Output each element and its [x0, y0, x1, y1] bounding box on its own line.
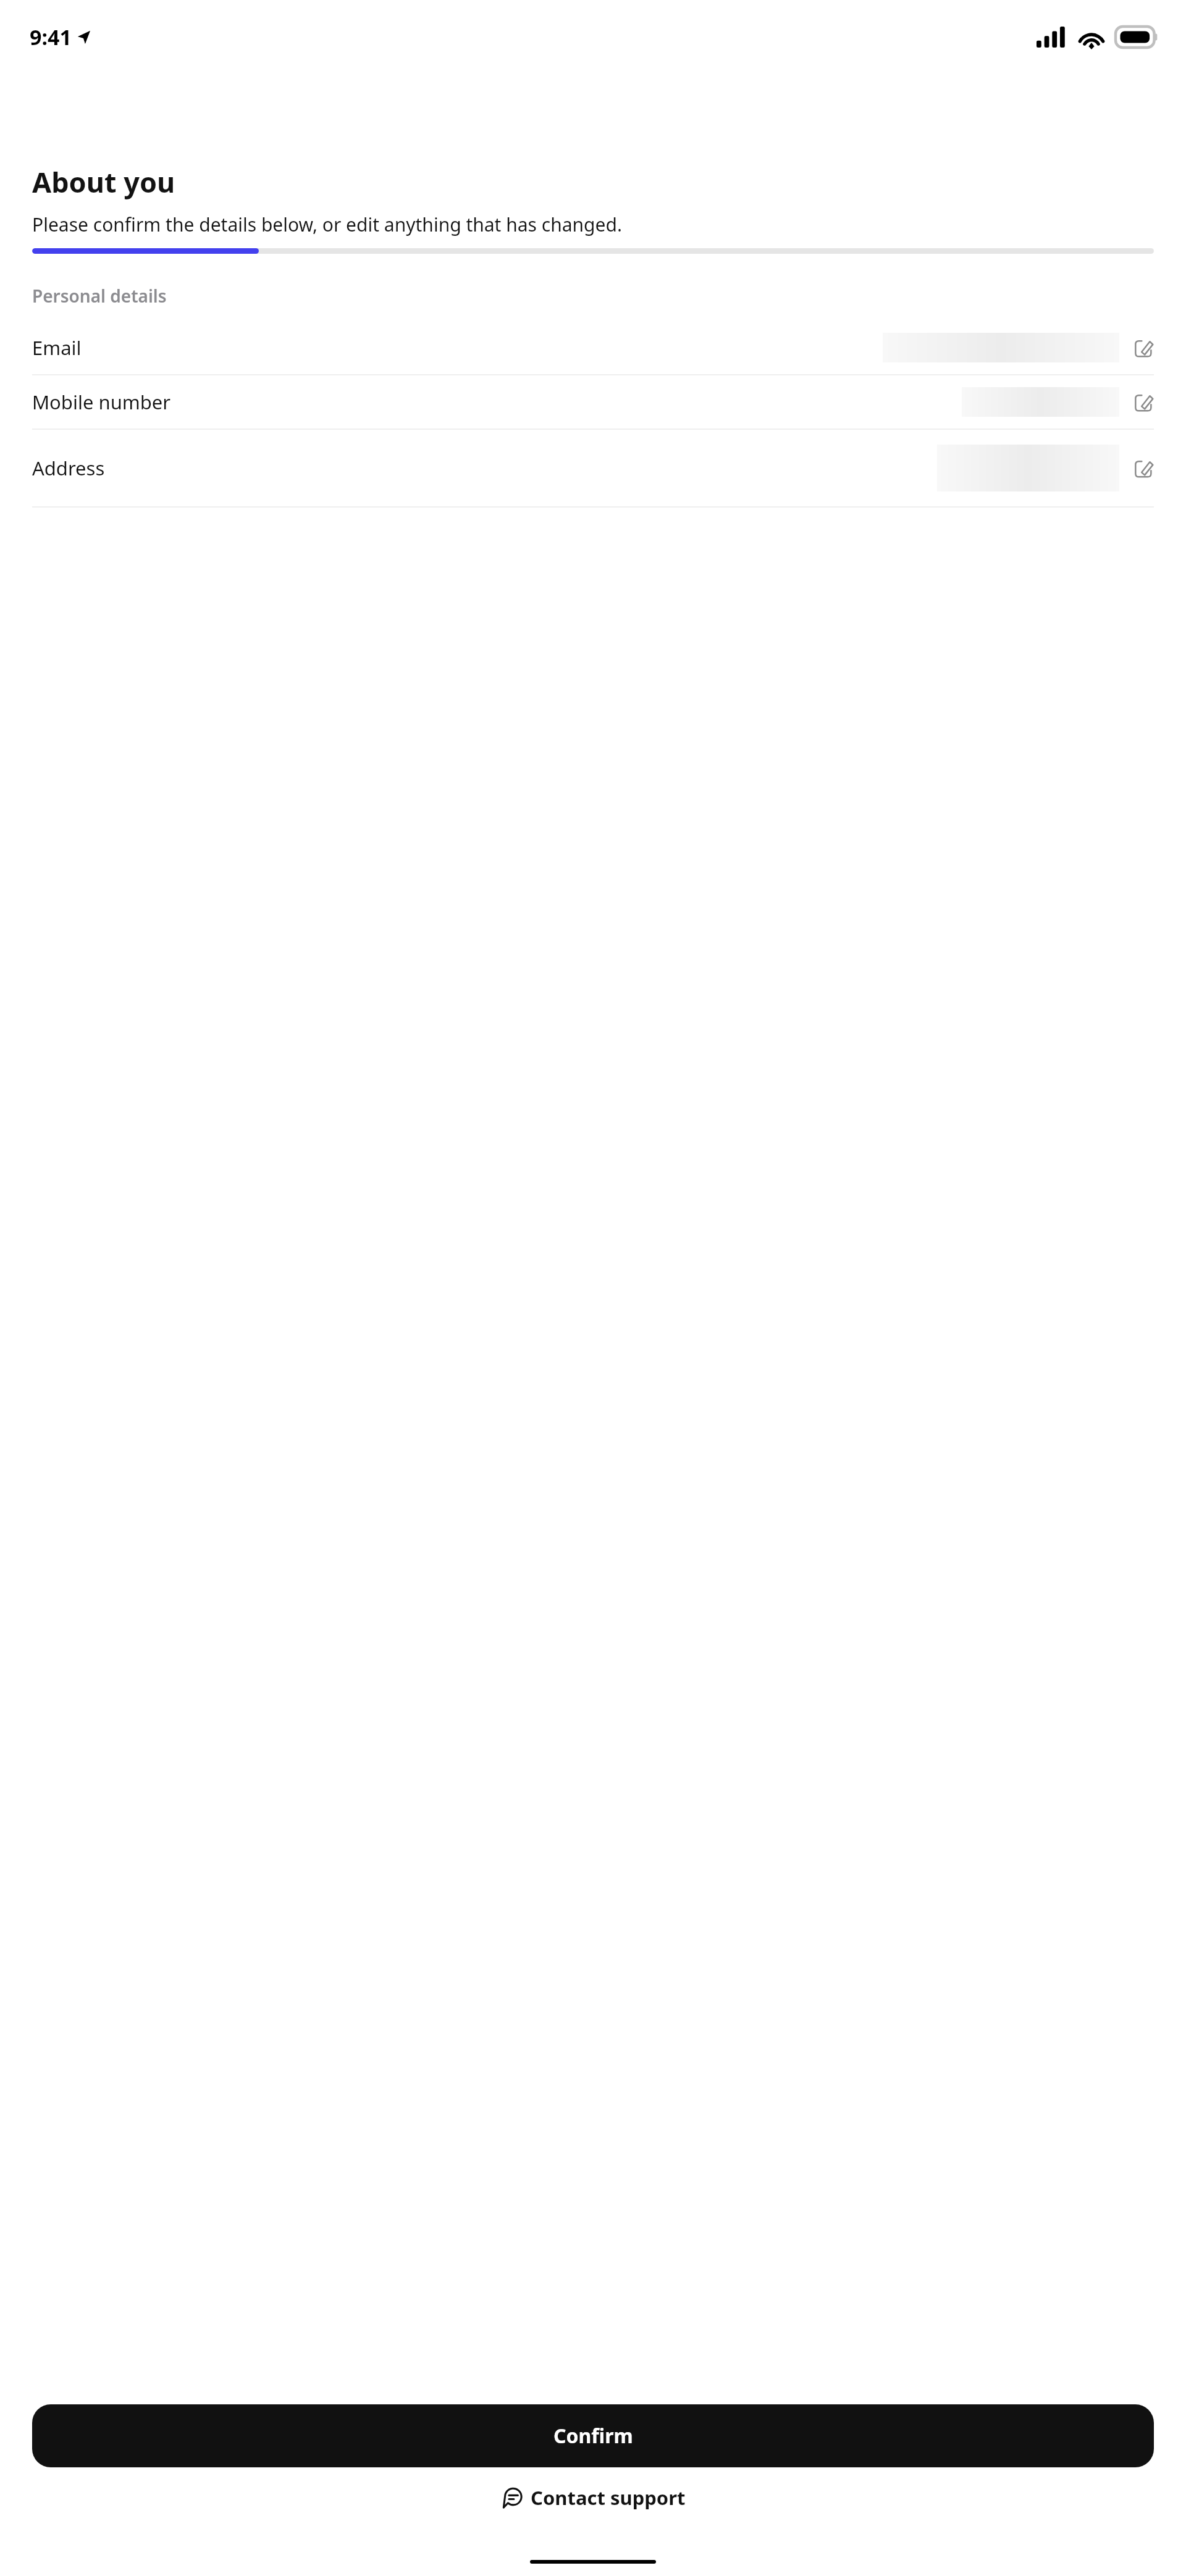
other: Edit Mobile number: [1133, 392, 1154, 412]
staticText: Personal details: [32, 284, 167, 307]
button[interactable]: Mobile number: [32, 375, 1154, 429]
button[interactable]: Email: [32, 321, 1154, 374]
staticText: Please confirm the details below, or edi…: [32, 212, 622, 237]
button[interactable]: Confirm: [32, 2404, 1154, 2467]
staticText: Mobile number: [32, 389, 171, 415]
staticText: About you: [32, 163, 175, 201]
other: Edit Address: [1133, 458, 1154, 479]
button[interactable]: Address: [32, 430, 1154, 506]
staticText: Contact support: [531, 2485, 686, 2511]
staticText: Address: [32, 455, 105, 481]
other: Edit Email: [1133, 338, 1154, 358]
staticText: Email: [32, 335, 82, 361]
staticText: 9:41: [30, 23, 72, 51]
staticText: Confirm: [553, 2422, 633, 2449]
button[interactable]: Contact support: [0, 2478, 1186, 2517]
